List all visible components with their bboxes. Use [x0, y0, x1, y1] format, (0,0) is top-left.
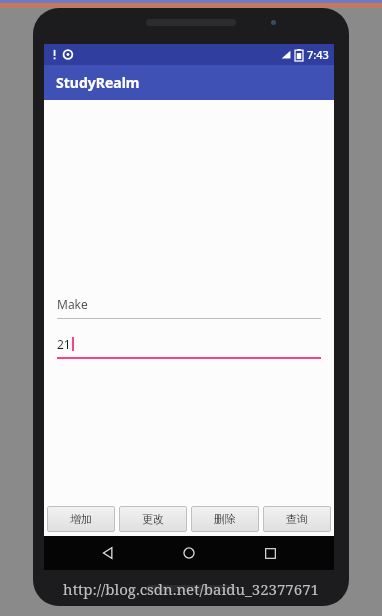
button[interactable]: 21: [57, 336, 321, 359]
staticText: 增加: [70, 512, 92, 526]
button[interactable]: 删除: [191, 506, 259, 532]
button[interactable]: Back: [91, 536, 125, 570]
button[interactable]: 更改: [119, 506, 187, 532]
button[interactable]: Home: [172, 536, 206, 570]
staticText: StudyRealm: [56, 73, 140, 92]
button[interactable]: Recent apps: [253, 536, 287, 570]
staticText: http://blog.csdn.net/baidu_32377671: [0, 579, 382, 599]
button[interactable]: 增加: [47, 506, 115, 532]
staticText: 21: [57, 336, 71, 352]
button[interactable]: Make: [57, 296, 321, 319]
staticText: Make: [57, 296, 88, 312]
button[interactable]: 查询: [263, 506, 331, 532]
staticText: 更改: [142, 512, 164, 526]
staticText: 删除: [214, 512, 236, 526]
staticText: 查询: [286, 512, 308, 526]
staticText: 7:43: [307, 47, 329, 62]
